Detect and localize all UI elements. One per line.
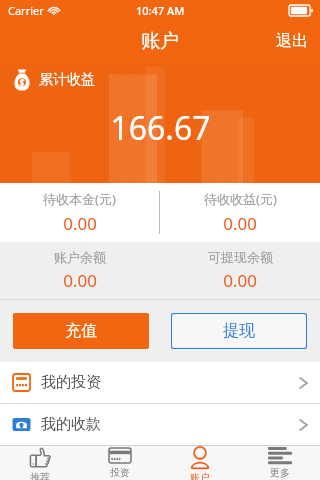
staticText: 可提现余额 <box>208 249 273 265</box>
button[interactable]: 投资 <box>80 446 160 480</box>
staticText: 我的投资 <box>41 373 299 392</box>
staticText: 投资 <box>110 466 130 479</box>
button[interactable]: 更多 <box>240 446 320 480</box>
staticText: 退出 <box>276 31 308 51</box>
staticText: 10:47 AM <box>136 3 185 18</box>
staticText: 账户余额 <box>54 249 106 265</box>
staticText: 0.00 <box>223 269 257 292</box>
staticText: 待收收益(元) <box>204 190 277 208</box>
staticText: 0.00 <box>223 212 257 235</box>
button[interactable]: 退出 <box>264 25 320 57</box>
staticText: 充值 <box>65 321 97 341</box>
staticText: 累计收益 <box>39 71 95 89</box>
staticText: 0.00 <box>63 269 97 292</box>
staticText: 166.67 <box>110 106 211 150</box>
button[interactable]: 提现 <box>171 313 307 349</box>
staticText: 待收本金(元) <box>43 190 116 208</box>
staticText: 推荐 <box>30 471 50 480</box>
staticText: 0.00 <box>63 212 97 235</box>
button[interactable]: 我的收款 <box>0 404 320 445</box>
staticText: Carrier <box>8 3 44 18</box>
button[interactable]: 推荐 <box>0 446 80 480</box>
staticText: 账户 <box>141 29 179 53</box>
button[interactable]: 我的投资 <box>0 362 320 403</box>
button[interactable]: 充值 <box>13 313 149 349</box>
staticText: 账户 <box>190 471 210 480</box>
staticText: 更多 <box>270 466 290 479</box>
staticText: 我的收款 <box>41 415 299 434</box>
button[interactable]: 账户 <box>160 446 240 480</box>
staticText: 提现 <box>223 321 255 341</box>
